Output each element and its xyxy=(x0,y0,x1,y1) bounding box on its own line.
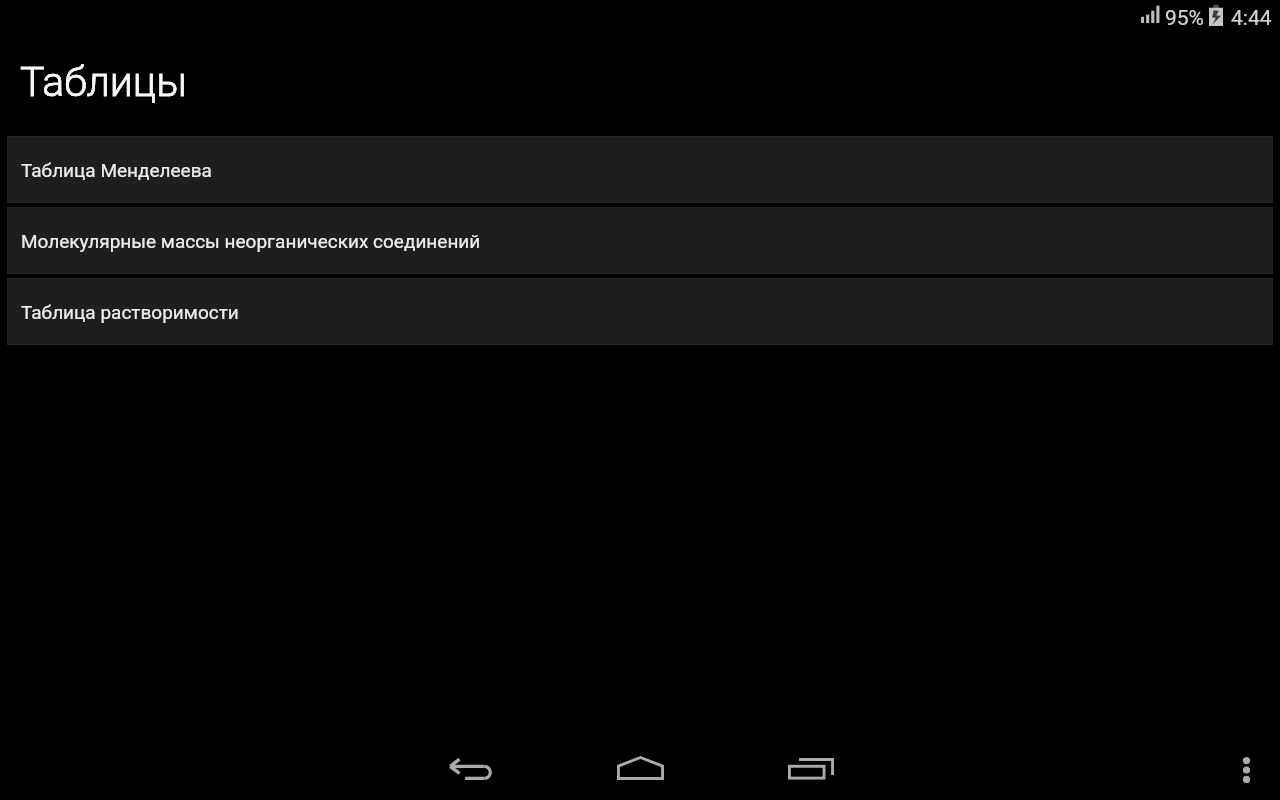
staticText: Молекулярные массы неорганических соедин… xyxy=(21,230,481,252)
button[interactable]: Молекулярные массы неорганических соедин… xyxy=(7,207,1273,274)
button[interactable]: Таблица растворимости xyxy=(7,278,1273,345)
staticText: Таблицы xyxy=(20,58,188,106)
staticText: 95% xyxy=(1165,6,1204,31)
staticText: 4:44 xyxy=(1231,6,1272,31)
button[interactable]: Back xyxy=(425,737,515,800)
button[interactable]: Таблица Менделеева xyxy=(7,136,1273,203)
staticText: Таблицы xyxy=(20,58,188,106)
button[interactable]: More options xyxy=(1222,740,1270,800)
staticText: Таблица растворимости xyxy=(21,301,239,323)
button[interactable]: Home xyxy=(595,736,685,800)
staticText: Таблица Менделеева xyxy=(21,159,212,181)
button[interactable]: Recent apps xyxy=(766,738,856,800)
